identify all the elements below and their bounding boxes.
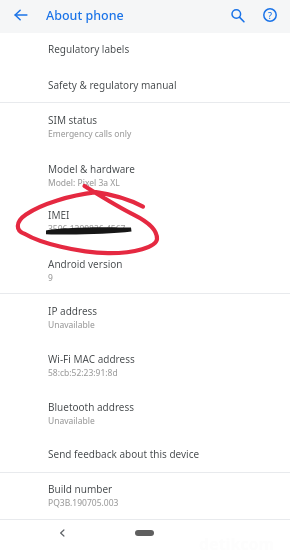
staticText: Model: Pixel 3a XL (48, 177, 120, 189)
button[interactable]: SIM status (0, 103, 290, 151)
staticText: Emergency calls only (48, 128, 132, 140)
button[interactable]: IMEI (0, 198, 290, 246)
button[interactable]: Back (49, 520, 75, 546)
button[interactable]: Regulatory labels (0, 33, 290, 66)
button[interactable]: Home (131, 520, 157, 546)
staticText: PQ3B.190705.003 (48, 497, 119, 509)
button[interactable]: Wi-Fi MAC address (0, 342, 290, 389)
staticText: Unavailable (48, 319, 95, 331)
staticText: Wi-Fi MAC address (48, 352, 135, 366)
staticText: IP address (48, 304, 98, 318)
staticText: 9 (48, 272, 53, 284)
staticText: Regulatory labels (48, 42, 130, 56)
staticText: About phone (46, 7, 124, 24)
staticText: Android version (48, 257, 123, 271)
button[interactable]: Back (7, 1, 35, 29)
button[interactable]: Search (223, 1, 251, 29)
staticText: Build number (48, 482, 113, 496)
staticText: SIM status (48, 113, 98, 127)
button[interactable]: Bluetooth address (0, 389, 290, 437)
staticText: Unavailable (48, 415, 95, 427)
button[interactable]: Send feedback about this device (0, 437, 290, 472)
staticText: ? (268, 9, 273, 21)
staticText: Model & hardware (48, 162, 135, 176)
button[interactable]: Android version (0, 246, 290, 293)
button[interactable]: Model & hardware (0, 151, 290, 198)
staticText: 58:cb:52:23:91:8d (48, 367, 118, 379)
staticText: IMEI (48, 208, 70, 222)
button[interactable]: Help (256, 1, 284, 29)
button[interactable]: Safety & regulatory manual (0, 66, 290, 102)
staticText: 3506 1299826 4567 (48, 223, 126, 235)
staticText: Bluetooth address (48, 400, 135, 414)
button[interactable]: IP address (0, 294, 290, 342)
staticText: Send feedback about this device (48, 447, 200, 461)
staticText: Safety & regulatory manual (48, 78, 177, 92)
button[interactable]: Build number (0, 473, 290, 519)
